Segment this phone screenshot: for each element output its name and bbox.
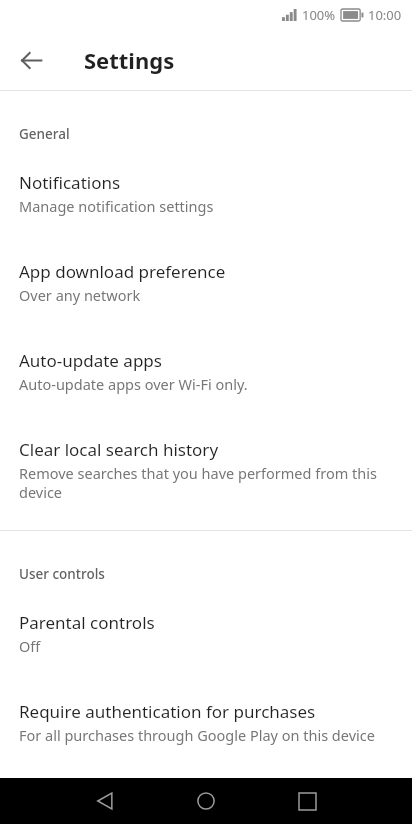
button[interactable]: Back [56, 778, 154, 824]
button[interactable]: App download preference [0, 262, 412, 305]
staticText: Auto-update apps [19, 351, 162, 372]
button[interactable]: Recent apps [258, 778, 356, 824]
button[interactable]: Auto-update apps [0, 351, 412, 394]
button[interactable]: Parental controls [0, 613, 412, 656]
staticText: 100% [302, 6, 336, 24]
button[interactable]: Back [7, 36, 55, 84]
staticText: Clear local search history [19, 440, 219, 461]
staticText: For all purchases through Google Play on… [19, 726, 375, 745]
staticText: User controls [19, 565, 105, 583]
staticText: Notifications [19, 173, 121, 194]
button[interactable]: Home [157, 778, 255, 824]
button[interactable]: Notifications [0, 173, 412, 216]
button[interactable]: Require authentication for purchases [0, 702, 412, 745]
staticText: Parental controls [19, 613, 155, 634]
staticText: Over any network [19, 286, 141, 305]
staticText: Auto-update apps over Wi-Fi only. [19, 375, 248, 394]
staticText: 10:00 [368, 6, 402, 24]
staticText: Manage notification settings [19, 197, 214, 216]
staticText: Settings [84, 45, 175, 75]
button[interactable]: Clear local search history [0, 440, 412, 502]
staticText: Off [19, 637, 41, 656]
staticText: Require authentication for purchases [19, 702, 316, 723]
staticText: App download preference [19, 262, 226, 283]
staticText: Remove searches that you have performed … [19, 464, 392, 502]
staticText: General [19, 125, 70, 143]
